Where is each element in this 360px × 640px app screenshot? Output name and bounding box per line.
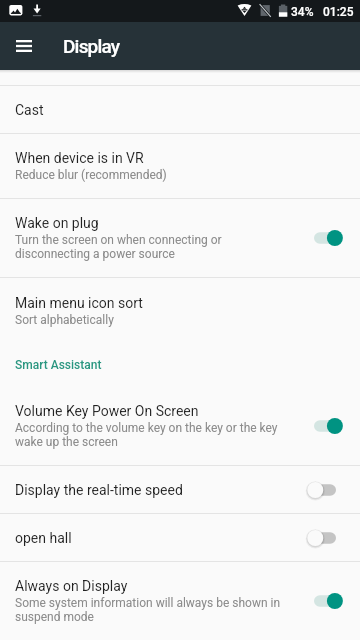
staticText: Wake on plug [15, 215, 99, 231]
button[interactable]: Open navigation drawer [0, 22, 48, 70]
staticText: Display [63, 35, 120, 57]
staticText: Display the real-time speed [15, 482, 183, 498]
button[interactable]: When device is in VR [0, 134, 360, 198]
staticText: Reduce blur (recommended) [15, 168, 167, 182]
staticText: 34% [291, 5, 314, 19]
staticText: Turn the screen on when connecting or di… [15, 233, 289, 261]
button[interactable]: Switch on [307, 589, 343, 613]
staticText: Always on Display [15, 578, 128, 594]
button[interactable]: Display the real-time speed [0, 466, 360, 513]
button[interactable]: Switch on [307, 226, 343, 250]
staticText: Cast [15, 102, 44, 118]
staticText: When device is in VR [15, 150, 144, 166]
staticText: Smart Assistant [15, 358, 102, 372]
button[interactable]: open hall [0, 514, 360, 561]
button[interactable]: Always on Display [0, 562, 360, 640]
button[interactable]: Volume Key Power On Screen [0, 387, 360, 465]
staticText: Volume Key Power On Screen [15, 403, 199, 419]
staticText: According to the volume key on the key o… [15, 421, 289, 449]
staticText: Some system information will always be s… [15, 596, 289, 624]
staticText: 01:25 [323, 5, 354, 19]
button[interactable]: Switch on [307, 414, 343, 438]
button[interactable]: Main menu icon sort [0, 278, 360, 343]
button[interactable]: Switch off [307, 526, 343, 550]
staticText: Main menu icon sort [15, 295, 143, 311]
button[interactable]: Wake on plug [0, 199, 360, 277]
button[interactable]: Switch off [307, 478, 343, 502]
staticText: Sort alphabetically [15, 313, 114, 327]
button[interactable]: Cast [0, 86, 360, 133]
staticText: open hall [15, 530, 72, 546]
